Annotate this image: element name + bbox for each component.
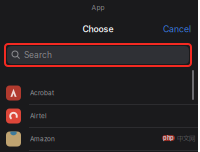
staticText: Amazon	[30, 135, 55, 143]
button[interactable]: Search	[7, 46, 189, 64]
staticText: Airtel	[30, 112, 47, 120]
staticText: Cancel	[163, 24, 191, 34]
button[interactable]: Amazon	[0, 128, 198, 151]
staticText: App	[91, 3, 104, 12]
staticText: Search	[24, 50, 52, 60]
button[interactable]: Cancel	[138, 21, 198, 37]
button[interactable]: Acrobat	[0, 82, 198, 105]
staticText: php	[163, 135, 174, 141]
staticText: 中文网	[177, 133, 195, 143]
staticText: Choose	[82, 24, 113, 34]
button[interactable]: Airtel	[0, 105, 198, 128]
staticText: Acrobat	[30, 89, 54, 97]
